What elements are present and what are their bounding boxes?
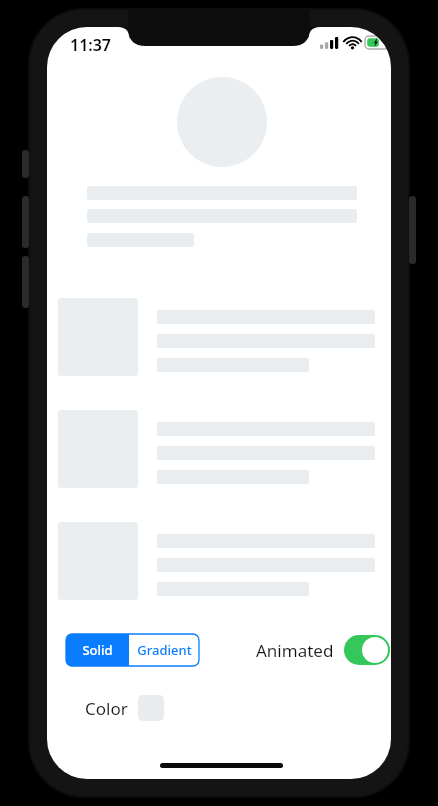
other: Animated toggle, on xyxy=(344,635,390,665)
button[interactable]: Color xyxy=(85,691,164,725)
staticText: Solid xyxy=(82,641,113,659)
staticText: 11:37 xyxy=(70,34,112,56)
button[interactable]: Gradient xyxy=(129,634,199,666)
other: Pick color xyxy=(138,695,164,721)
staticText: Color xyxy=(85,697,128,720)
button[interactable]: Animated xyxy=(256,630,390,670)
staticText: Animated xyxy=(256,639,334,662)
staticText: Gradient xyxy=(137,641,192,659)
button[interactable]: Solid xyxy=(66,634,129,666)
